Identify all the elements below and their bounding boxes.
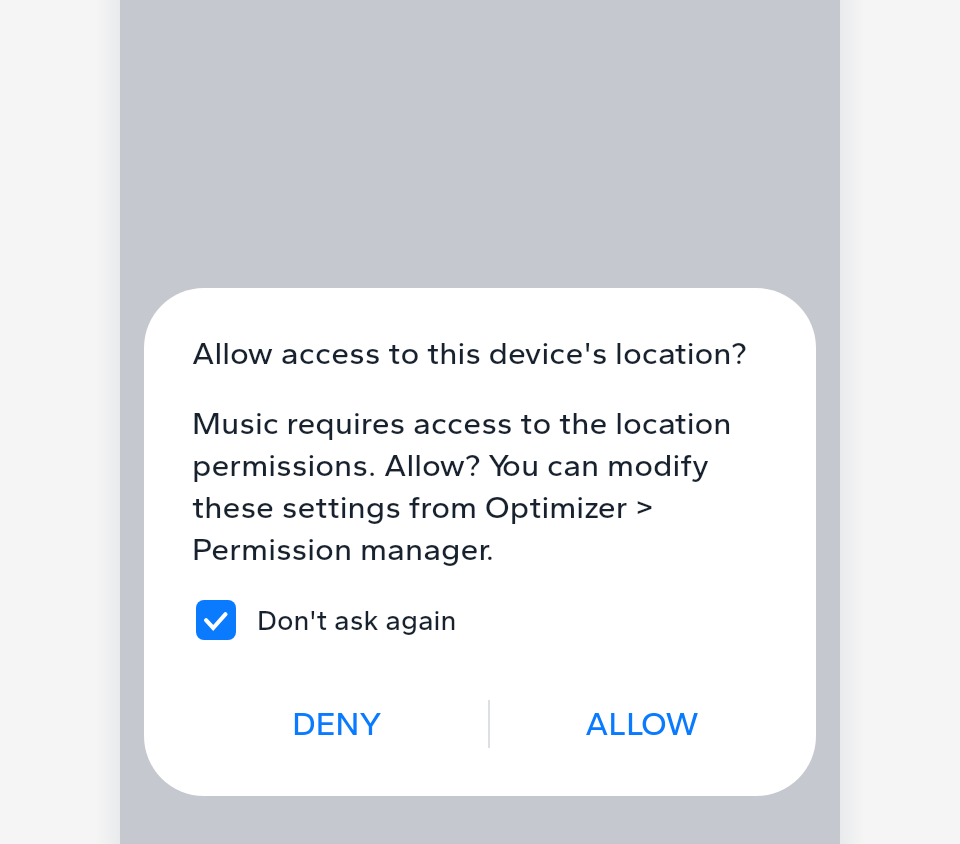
button[interactable]: Dismiss dialog <box>120 0 840 844</box>
button[interactable]: Don't ask again, checked <box>196 588 457 652</box>
other: Don't ask again, checked <box>196 600 236 640</box>
staticText: Don't ask again <box>257 603 457 637</box>
button[interactable]: ALLOW <box>490 676 793 772</box>
button[interactable]: DENY <box>185 676 488 772</box>
staticText: ALLOW <box>585 704 699 744</box>
staticText: Music requires access to the location pe… <box>192 404 744 568</box>
staticText: DENY <box>292 704 382 744</box>
staticText: Allow access to this device's location? <box>192 334 747 372</box>
